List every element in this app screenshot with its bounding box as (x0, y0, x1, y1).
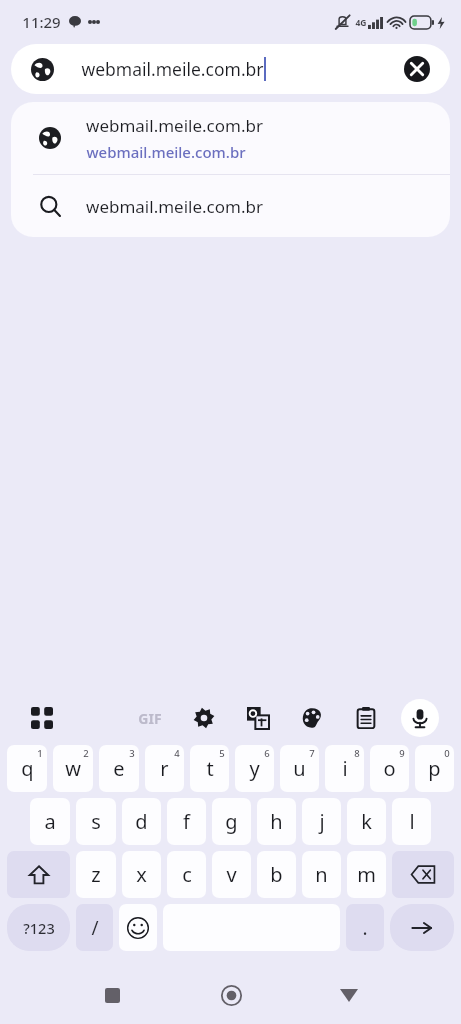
button[interactable]: l (392, 798, 431, 845)
button[interactable]: . (346, 904, 384, 951)
staticText: 1 (37, 747, 43, 760)
staticText: k (361, 808, 372, 835)
staticText: 8 (354, 747, 360, 760)
staticText: q (21, 755, 34, 782)
button[interactable]: Clipboard (339, 707, 393, 729)
button[interactable]: Back (327, 973, 371, 1017)
button[interactable]: webmail.meile.com.br (11, 102, 450, 174)
staticText: GIF (138, 709, 162, 728)
staticText: e (113, 755, 125, 782)
staticText: 5 (219, 747, 225, 760)
button[interactable]: Translate (231, 707, 285, 729)
button[interactable]: f (167, 798, 206, 845)
button[interactable]: r (145, 745, 184, 792)
button[interactable]: ?123 (7, 904, 70, 951)
staticText: n (315, 861, 328, 888)
staticText: h (270, 808, 283, 835)
staticText: 7 (309, 747, 315, 760)
staticText: z (91, 861, 101, 888)
staticText: s (91, 808, 101, 835)
button[interactable]: m (347, 851, 386, 898)
button[interactable]: Voice input (393, 699, 447, 737)
button[interactable]: q (7, 745, 47, 792)
staticText: r (160, 755, 169, 782)
button[interactable]: webmail.meile.com.br (11, 44, 450, 94)
staticText: a (44, 808, 56, 835)
staticText: 9 (399, 747, 405, 760)
staticText: u (293, 755, 306, 782)
staticText: . (362, 915, 368, 941)
button[interactable]: p (415, 745, 454, 792)
staticText: webmail.meile.com.br (81, 57, 264, 81)
staticText: i (342, 755, 348, 782)
staticText: d (135, 808, 148, 835)
staticText: 2 (83, 747, 89, 760)
button[interactable]: j (302, 798, 341, 845)
staticText: 3 (129, 747, 135, 760)
button[interactable]: c (167, 851, 206, 898)
button[interactable]: n (302, 851, 341, 898)
staticText: j (319, 808, 325, 835)
button[interactable]: b (257, 851, 296, 898)
staticText: w (65, 755, 81, 782)
staticText: f (183, 808, 190, 835)
button[interactable]: a (30, 798, 70, 845)
button[interactable]: Backspace (392, 851, 454, 898)
button[interactable]: Home (209, 973, 253, 1017)
button[interactable]: s (76, 798, 116, 845)
button[interactable]: y (235, 745, 274, 792)
staticText: b (270, 861, 283, 888)
staticText: 4G (355, 17, 367, 29)
staticText: y (249, 755, 260, 782)
staticText: v (226, 861, 237, 888)
button[interactable]: g (212, 798, 251, 845)
staticText: c (182, 861, 192, 888)
staticText: m (357, 861, 376, 888)
staticText: webmail.meile.com.br (86, 195, 263, 218)
button[interactable]: Settings (177, 707, 231, 729)
button[interactable]: Emoji (119, 904, 157, 951)
button[interactable]: Recents (90, 973, 134, 1017)
button[interactable]: Themes (285, 707, 339, 729)
button[interactable]: webmail.meile.com.br (11, 175, 450, 237)
staticText: t (206, 755, 214, 782)
button[interactable]: k (347, 798, 386, 845)
staticText: o (383, 755, 396, 782)
button[interactable]: z (76, 851, 116, 898)
button[interactable]: Apps (14, 707, 69, 729)
staticText: p (428, 755, 441, 782)
staticText: 4 (174, 747, 180, 760)
staticText: webmail.meile.com.br (86, 114, 263, 137)
staticText: x (136, 861, 147, 888)
button[interactable]: e (99, 745, 139, 792)
button[interactable]: t (190, 745, 229, 792)
staticText: g (225, 808, 238, 835)
button[interactable]: Go (390, 904, 454, 951)
staticText: 11:29 (22, 12, 61, 32)
button[interactable]: u (280, 745, 319, 792)
staticText: ?123 (23, 918, 55, 938)
button[interactable]: i (325, 745, 364, 792)
button[interactable]: x (122, 851, 161, 898)
button[interactable]: d (122, 798, 161, 845)
button[interactable]: w (53, 745, 93, 792)
button[interactable]: h (257, 798, 296, 845)
button[interactable]: v (212, 851, 251, 898)
staticText: l (409, 808, 415, 835)
button[interactable]: Shift (7, 851, 70, 898)
button[interactable]: Clear (404, 56, 430, 82)
staticText: 0 (444, 747, 450, 760)
button[interactable]: / (76, 904, 113, 951)
button[interactable]: o (370, 745, 409, 792)
staticText: 6 (264, 747, 270, 760)
staticText: / (91, 915, 99, 941)
staticText: webmail.meile.com.br (86, 142, 246, 162)
